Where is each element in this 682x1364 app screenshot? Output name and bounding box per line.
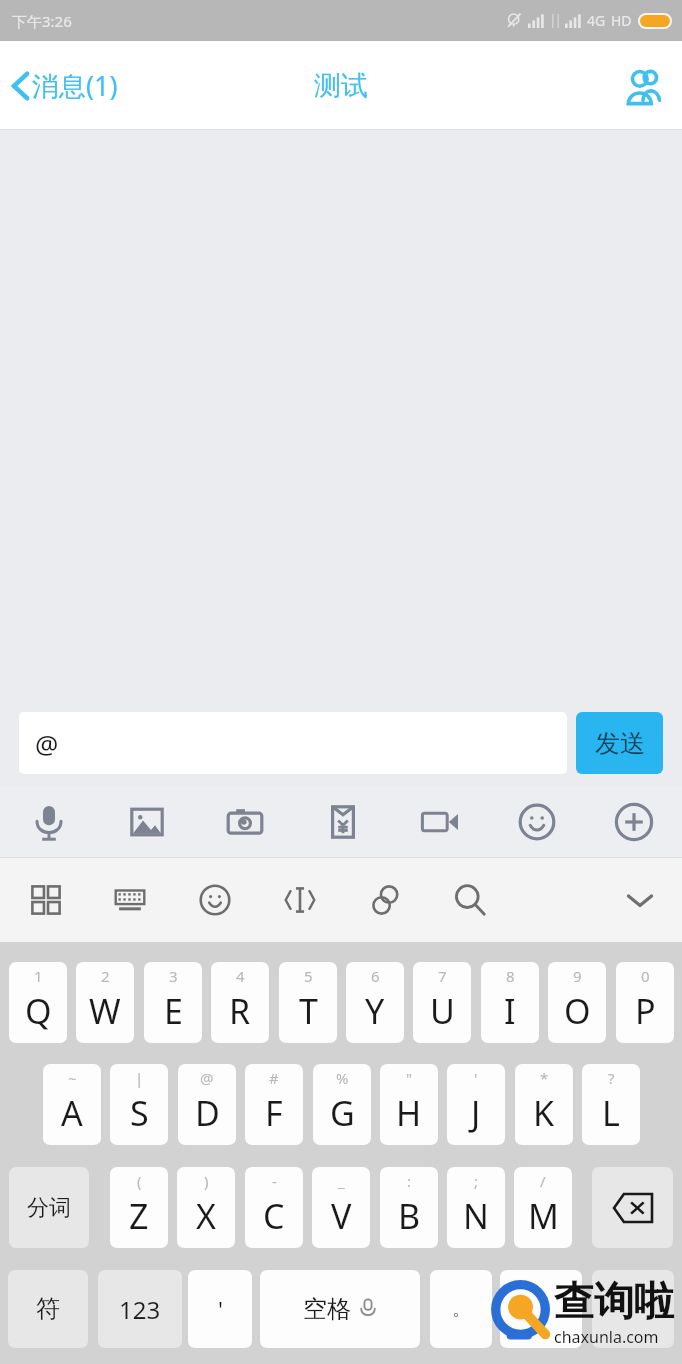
button[interactable]: # <box>245 1064 303 1145</box>
staticText: I <box>504 988 516 1034</box>
button[interactable]: 4 <box>211 962 269 1043</box>
staticText: 3 <box>169 966 178 986</box>
button[interactable]: 符 <box>8 1270 88 1348</box>
button[interactable]: More <box>585 786 682 858</box>
staticText: ; <box>474 1171 479 1191</box>
button[interactable]: 7 <box>413 962 471 1043</box>
button[interactable]: Emoji <box>183 868 247 932</box>
staticText: M <box>528 1193 559 1239</box>
staticText: 7 <box>438 966 447 986</box>
button[interactable]: Enter <box>500 1270 582 1348</box>
staticText: J <box>471 1090 481 1136</box>
staticText: HD <box>611 11 632 30</box>
staticText: E <box>164 988 183 1034</box>
button[interactable]: 6 <box>346 962 404 1043</box>
button[interactable]: Photo <box>98 786 196 858</box>
staticText: A <box>61 1090 83 1136</box>
button[interactable]: " <box>380 1064 438 1145</box>
button[interactable]: Search <box>438 868 502 932</box>
staticText: ' <box>218 1294 223 1324</box>
button[interactable]: : <box>380 1167 438 1248</box>
button[interactable]: ; <box>447 1167 505 1248</box>
staticText: 0 <box>641 966 650 986</box>
button[interactable]: ' <box>188 1270 252 1348</box>
button[interactable]: ~ <box>43 1064 101 1145</box>
staticText: P <box>635 988 656 1034</box>
button[interactable]: GIF <box>391 786 488 858</box>
button[interactable]: Camera <box>196 786 294 858</box>
staticText: % <box>336 1068 349 1088</box>
staticText: G <box>330 1090 355 1136</box>
button[interactable]: Cursor <box>268 868 332 932</box>
button[interactable]: - <box>245 1167 303 1248</box>
staticText: # <box>269 1068 279 1088</box>
staticText: D <box>195 1090 220 1136</box>
button[interactable]: 。 <box>430 1270 492 1348</box>
button[interactable]: * <box>515 1064 573 1145</box>
button[interactable]: 9 <box>548 962 606 1043</box>
button[interactable]: 消息(1) <box>0 59 132 112</box>
button[interactable]: ' <box>447 1064 505 1145</box>
staticText: * <box>540 1068 549 1088</box>
staticText: S <box>130 1090 149 1136</box>
staticText: ) <box>204 1171 209 1191</box>
button[interactable]: 1 <box>9 962 67 1043</box>
staticText: W <box>89 988 121 1034</box>
button[interactable]: Enter <box>592 1270 674 1348</box>
staticText: 4G <box>587 11 606 30</box>
button[interactable]: Red packet <box>294 786 391 858</box>
staticText: 1 <box>34 966 43 986</box>
button[interactable]: 分词 <box>9 1167 89 1248</box>
staticText: ( <box>137 1171 142 1191</box>
staticText: 2 <box>101 966 110 986</box>
staticText: V <box>331 1193 352 1239</box>
staticText: T <box>299 988 318 1034</box>
staticText: Z <box>129 1193 149 1239</box>
button[interactable]: 123 <box>98 1270 182 1348</box>
staticText: ~ <box>68 1068 77 1088</box>
staticText: 查询啦 <box>554 1276 674 1326</box>
button[interactable]: @ <box>178 1064 236 1145</box>
staticText: ' <box>474 1068 478 1088</box>
staticText: 。 <box>452 1298 470 1321</box>
staticText: 6 <box>371 966 380 986</box>
button[interactable]: 5 <box>279 962 337 1043</box>
button[interactable]: Voice <box>0 786 98 858</box>
staticText: : <box>407 1171 412 1191</box>
staticText: | <box>135 1068 144 1088</box>
button[interactable]: % <box>313 1064 371 1145</box>
staticText: 123 <box>119 1293 161 1326</box>
button[interactable]: _ <box>312 1167 370 1248</box>
button[interactable]: 空格 <box>260 1270 420 1348</box>
button[interactable]: 2 <box>76 962 134 1043</box>
button[interactable]: Clipboard <box>353 868 417 932</box>
staticText: 符 <box>36 1294 60 1324</box>
button[interactable]: / <box>514 1167 572 1248</box>
staticText: 发送 <box>595 728 645 759</box>
button[interactable]: ? <box>582 1064 640 1145</box>
staticText: 下午3:26 <box>12 11 72 31</box>
button[interactable]: 0 <box>616 962 674 1043</box>
staticText: 8 <box>506 966 515 986</box>
staticText: @ <box>35 726 59 761</box>
button[interactable]: 3 <box>144 962 202 1043</box>
button[interactable]: Group members <box>604 55 682 117</box>
button[interactable]: Emoji <box>488 786 585 858</box>
staticText: 4 <box>236 966 245 986</box>
button[interactable]: Hide keyboard <box>608 868 672 932</box>
staticText: - <box>272 1171 277 1191</box>
button[interactable]: @ <box>19 712 567 774</box>
button[interactable]: | <box>110 1064 168 1145</box>
staticText: " <box>406 1068 413 1088</box>
button[interactable]: Backspace <box>592 1167 673 1248</box>
button[interactable]: 8 <box>481 962 539 1043</box>
staticText: K <box>533 1090 555 1136</box>
button[interactable]: Numeric keyboard <box>98 868 162 932</box>
button[interactable]: 发送 <box>576 712 663 774</box>
button[interactable]: ( <box>110 1167 168 1248</box>
staticText: 分词 <box>27 1194 71 1222</box>
staticText: Y <box>365 988 385 1034</box>
staticText: chaxunla.com <box>554 1326 659 1348</box>
button[interactable]: Keyboard layouts <box>14 868 78 932</box>
button[interactable]: ) <box>177 1167 235 1248</box>
